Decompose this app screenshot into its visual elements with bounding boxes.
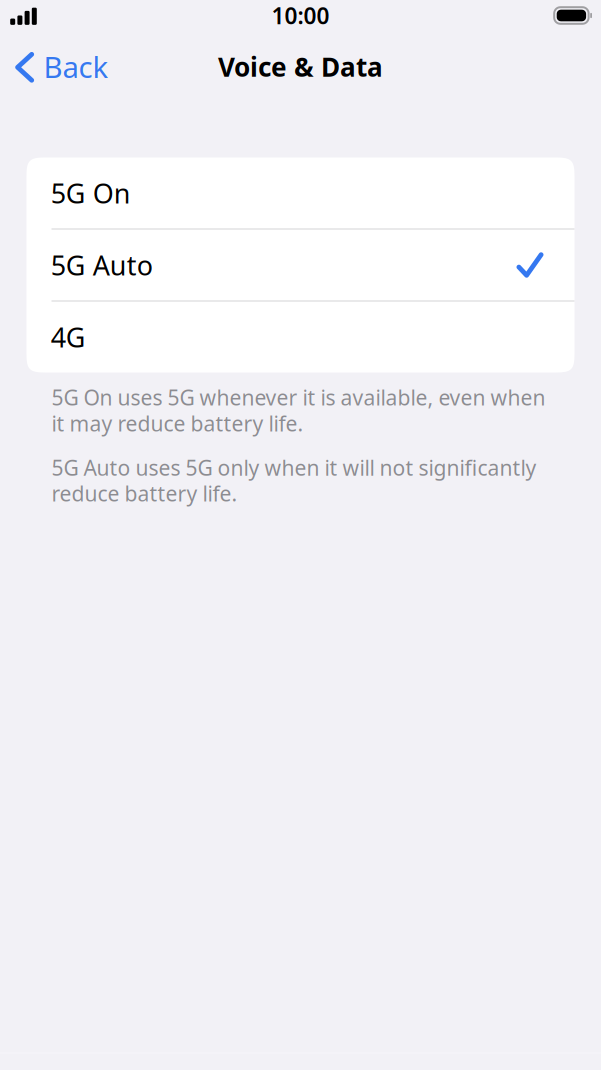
staticText: Back (44, 47, 109, 86)
button[interactable]: Back (0, 31, 125, 102)
button[interactable]: 5G On (26, 157, 574, 228)
staticText: 5G Auto (51, 247, 153, 283)
staticText: 5G On uses 5G whenever it is available, … (51, 384, 545, 436)
staticText: 4G (51, 319, 86, 355)
staticText: 10:00 (271, 0, 329, 30)
staticText: Voice & Data (218, 49, 383, 84)
staticText: 5G On (51, 175, 131, 211)
button[interactable]: 5G Auto (26, 229, 574, 300)
staticText: 5G Auto uses 5G only when it will not si… (51, 455, 536, 506)
button[interactable]: 4G (26, 301, 574, 372)
